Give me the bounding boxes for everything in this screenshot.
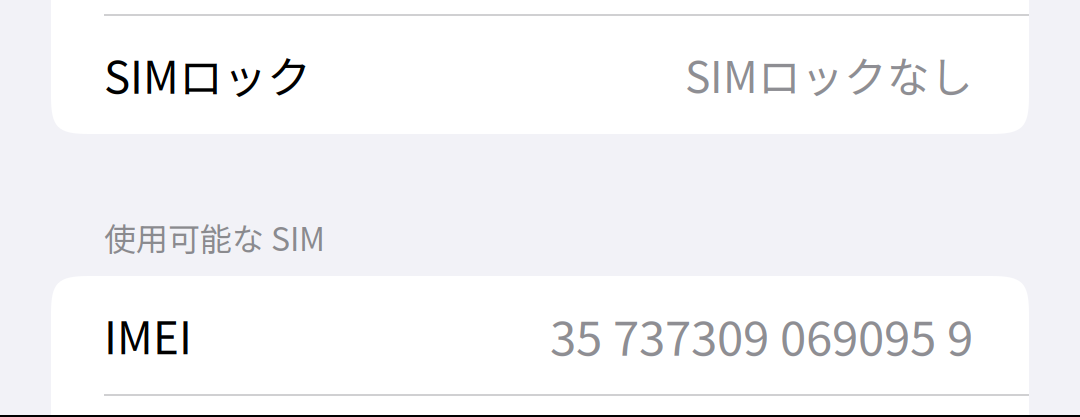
staticText: 35 737309 069095 9 — [550, 301, 973, 369]
staticText: SIMロック — [104, 43, 311, 106]
button[interactable]: IMEI — [51, 276, 1029, 394]
staticText: IMEI — [104, 303, 192, 367]
staticText: 使用可能な SIM — [104, 214, 325, 260]
button[interactable]: SIMロック — [51, 16, 1029, 133]
staticText: SIMロックなし — [685, 44, 973, 105]
